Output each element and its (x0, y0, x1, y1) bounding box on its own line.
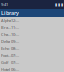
button[interactable]: Foxtrot (0, 52, 64, 59)
button[interactable]: Hotel (0, 66, 64, 72)
staticText: Hotel (1, 67, 10, 72)
staticText: ▮ ▮ ▮ (55, 2, 63, 7)
staticText: Foxtrot (1, 53, 11, 58)
button[interactable]: Echo (0, 45, 64, 52)
staticText: Library (1, 9, 19, 17)
staticText: 09:16 (11, 39, 19, 44)
staticText: 11:50 (11, 25, 19, 30)
staticText: 9:41 (1, 2, 8, 7)
button[interactable]: Golf (0, 59, 64, 66)
button[interactable]: Alpha (0, 17, 64, 24)
staticText: Charlie (1, 32, 11, 37)
staticText: Alpha (1, 18, 11, 23)
staticText: 07:55 (11, 53, 19, 58)
staticText: 10:22 (11, 32, 19, 37)
staticText: 06:30 (11, 67, 19, 72)
staticText: 07:01 (11, 60, 19, 65)
staticText: 08:40 (11, 46, 19, 51)
button[interactable]: Delta (0, 38, 64, 45)
button[interactable]: Charlie (0, 31, 64, 38)
staticText: 12:04 (11, 18, 19, 23)
button[interactable]: Bravo (0, 24, 64, 31)
staticText: Echo (1, 46, 9, 51)
staticText: Bravo (1, 25, 11, 30)
staticText: Golf (1, 60, 8, 65)
staticText: Delta (1, 39, 10, 44)
